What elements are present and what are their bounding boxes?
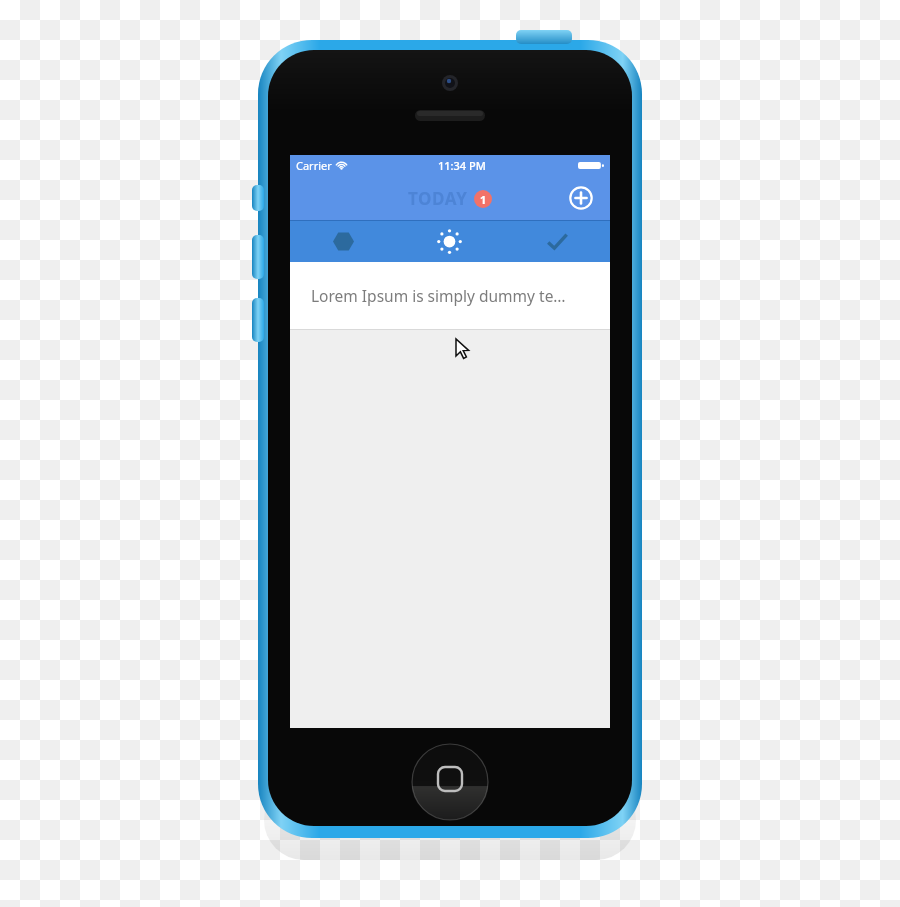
button[interactable]: Projects xyxy=(290,221,396,262)
button[interactable]: Add xyxy=(564,181,598,215)
staticText: 1 xyxy=(480,192,487,207)
staticText: TODAY xyxy=(408,187,468,210)
staticText: Lorem Ipsum is simply dummy te… xyxy=(311,285,566,306)
button[interactable]: Lorem Ipsum is simply dummy te… xyxy=(290,262,610,329)
button[interactable]: Today xyxy=(396,221,503,262)
staticText: Carrier xyxy=(296,158,332,173)
button[interactable]: Done xyxy=(503,221,610,262)
staticText: 11:34 PM xyxy=(438,158,486,173)
